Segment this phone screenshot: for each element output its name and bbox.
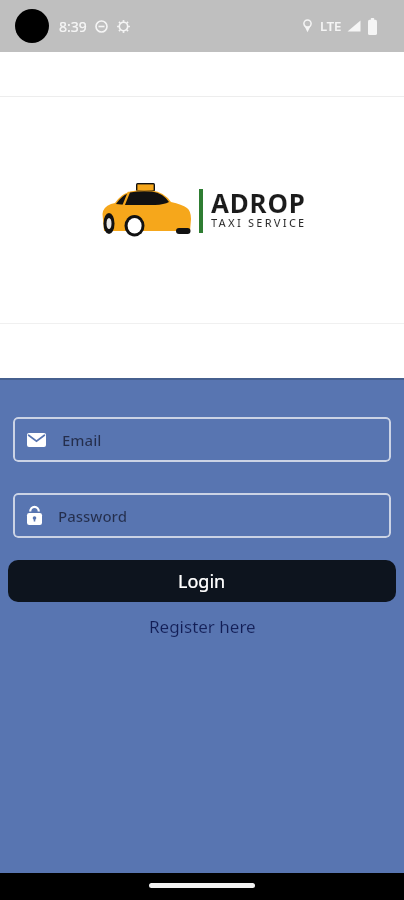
button[interactable]: Login	[8, 560, 396, 602]
button[interactable]: Password	[13, 493, 391, 538]
button[interactable]: Email	[13, 417, 391, 462]
staticText: ADROP	[211, 185, 306, 220]
staticText: Password	[58, 506, 127, 526]
staticText: LTE	[320, 17, 342, 35]
button[interactable]: Register here	[149, 615, 256, 638]
staticText: Register here	[149, 615, 256, 638]
staticText: Email	[62, 430, 102, 450]
staticText: TAXI SERVICE	[211, 215, 307, 230]
staticText: 8:39	[59, 17, 87, 36]
staticText: Login	[178, 569, 226, 594]
